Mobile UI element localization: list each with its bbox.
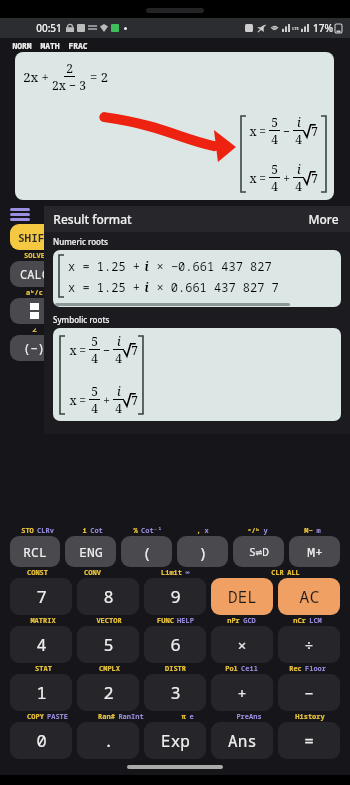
button[interactable]: SHIFT (10, 224, 58, 250)
button[interactable]: AC (278, 578, 340, 615)
staticText: m (316, 526, 321, 536)
staticText: x (69, 342, 77, 358)
staticText: CLR (271, 568, 284, 578)
button[interactable]: + (211, 674, 273, 711)
button[interactable]: ENG (65, 536, 116, 567)
button[interactable]: More (306, 209, 341, 229)
staticText: Pol (225, 664, 238, 674)
button[interactable]: (−) (10, 335, 58, 361)
staticText: = (259, 170, 266, 186)
staticText: RanInt (118, 712, 144, 722)
staticText: Numeric roots (53, 236, 108, 247)
staticText: × −0.661 437 827 (149, 258, 272, 274)
staticText: 2x + (23, 68, 49, 86)
staticText: − (283, 123, 290, 139)
staticText: CONV (84, 568, 101, 578)
staticText: y (263, 526, 268, 536)
button[interactable]: × (211, 626, 273, 663)
staticText: , (196, 526, 201, 536)
staticText: e (189, 712, 194, 722)
staticText: = (304, 730, 314, 752)
button[interactable]: 3 (144, 674, 206, 711)
staticText: ( (142, 542, 152, 562)
staticText: 7 (131, 342, 138, 358)
staticText: = (79, 392, 86, 408)
staticText: 7 (311, 170, 318, 186)
staticText: 5 (91, 383, 98, 399)
staticText: CONST (27, 568, 48, 578)
button[interactable]: ) (177, 536, 228, 567)
staticText: DISTR (165, 664, 186, 674)
staticText: 5 (271, 114, 278, 130)
button[interactable]: ÷ (278, 626, 340, 663)
staticText: nCr (293, 616, 306, 626)
staticText: History (295, 712, 325, 722)
staticText: 5 (91, 333, 98, 349)
staticText: × 0.661 437 827 7 (149, 279, 279, 295)
button[interactable]: 2x + (15, 52, 334, 200)
staticText: 4 (91, 400, 98, 416)
staticText: CMPLX (99, 664, 120, 674)
staticText: Ran# (98, 712, 115, 722)
button[interactable]: x (53, 328, 341, 421)
button[interactable]: 0 (10, 722, 72, 759)
staticText: 2 (103, 681, 114, 704)
button[interactable]: CALC (10, 261, 58, 287)
button[interactable]: 6 (144, 626, 206, 663)
button[interactable]: RCL (10, 536, 60, 567)
button[interactable]: 5 (77, 626, 139, 663)
button[interactable]: x = 1.25 + (53, 250, 341, 307)
button[interactable]: M+ (289, 536, 340, 567)
button[interactable]: − (278, 674, 340, 711)
button[interactable]: S⇌D (233, 536, 284, 567)
staticText: 17% (313, 21, 333, 35)
button[interactable]: . (77, 722, 139, 759)
staticText: VECTOR (96, 616, 122, 626)
button[interactable]: 9 (144, 578, 206, 615)
staticText: 2x − 3 (52, 77, 86, 93)
button[interactable]: 8 (77, 578, 139, 615)
staticText: LCM (309, 616, 322, 626)
button[interactable]: 2 (77, 674, 139, 711)
button[interactable] (10, 298, 58, 324)
staticText: + (103, 392, 110, 408)
staticText: 2 (66, 60, 73, 76)
staticText: 1 (36, 681, 47, 704)
staticText: 4 (271, 178, 278, 194)
staticText: i (297, 114, 301, 130)
staticText: PASTE (47, 712, 68, 722)
staticText: ) (198, 542, 208, 562)
staticText: 6 (170, 633, 181, 656)
staticText: AC (299, 585, 320, 608)
button[interactable]: 4 (10, 626, 72, 663)
staticText: LTE (292, 26, 299, 31)
staticText: More (308, 211, 339, 227)
button[interactable]: ( (121, 536, 172, 567)
button[interactable]: = (278, 722, 340, 759)
staticText: Rec (289, 664, 302, 674)
staticText: 00:51 (36, 21, 62, 35)
button[interactable]: DEL (211, 578, 273, 615)
button[interactable]: 1 (10, 674, 72, 711)
button[interactable]: Ans (211, 722, 273, 759)
staticText: DEL (228, 586, 257, 608)
staticText: M+ (307, 543, 323, 561)
staticText: 4 (295, 131, 302, 147)
staticText: Result format (53, 211, 132, 227)
staticText: − (304, 683, 314, 703)
staticText: x = 1.25 + (64, 279, 144, 295)
staticText: Cot⁻¹ (141, 526, 162, 536)
staticText: ∞ (185, 568, 190, 578)
staticText: − (103, 342, 110, 358)
staticText: x (204, 526, 209, 536)
staticText: Limit (161, 568, 182, 578)
button[interactable]: Exp (144, 722, 206, 759)
staticText: + (283, 170, 290, 186)
staticText: aᵇ/c (26, 288, 43, 298)
staticText: 0 (36, 729, 47, 752)
staticText: 4 (271, 131, 278, 147)
staticText: = 2 (90, 68, 108, 86)
button[interactable]: 7 (10, 578, 72, 615)
staticText: × (237, 635, 247, 655)
staticText: 4 (36, 633, 47, 656)
